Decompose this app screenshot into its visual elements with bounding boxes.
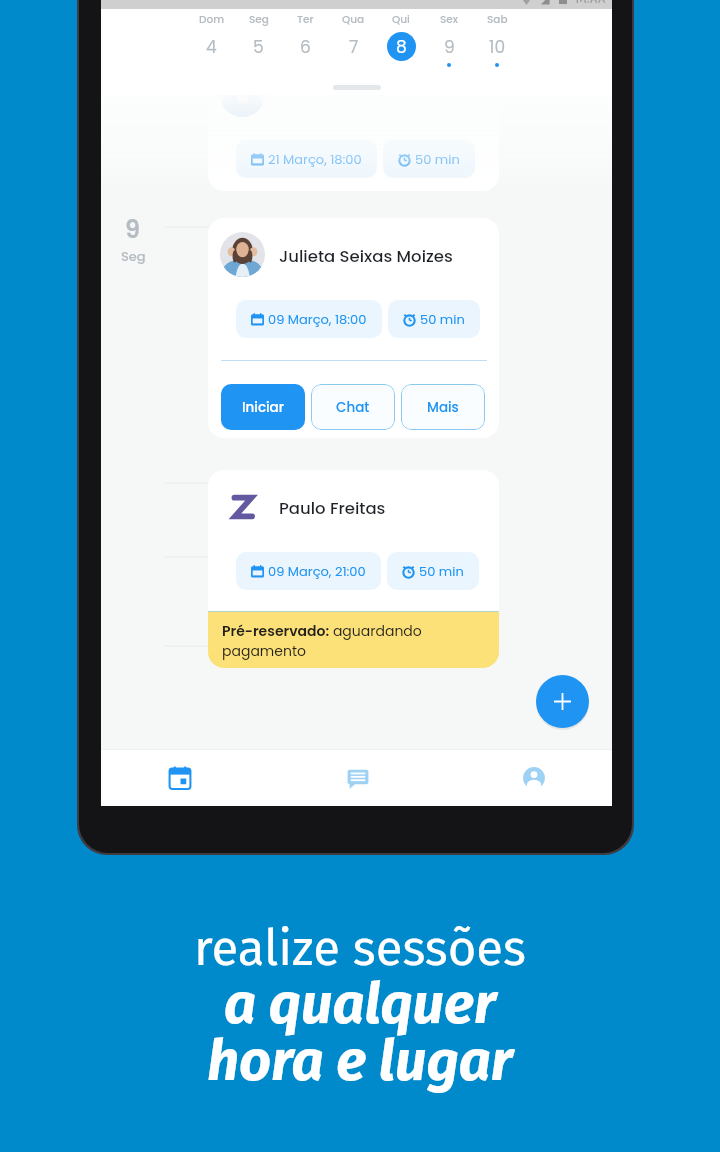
staticText: 10 <box>489 35 506 59</box>
staticText: Pré-reservado: aguardando pagamento <box>222 621 487 661</box>
button[interactable]: Qui <box>377 12 425 63</box>
staticText: hora e lugar <box>207 1028 513 1095</box>
staticText: realize sessões <box>194 919 526 978</box>
staticText: Paulo Freitas <box>279 497 386 520</box>
staticText: Julieta Seixas Moizes <box>279 245 453 268</box>
staticText: Chat <box>336 398 370 417</box>
button[interactable]: Julieta Seixas Moizes <box>208 218 499 438</box>
staticText: Sab <box>487 12 508 27</box>
staticText: a qualquer <box>224 971 496 1038</box>
staticText: Mais <box>427 398 459 417</box>
staticText: 50 min <box>415 150 460 168</box>
staticText: Qui <box>392 12 410 27</box>
staticText: 6 <box>300 35 311 59</box>
staticText: 9 <box>125 213 141 247</box>
staticText: 7 <box>349 35 359 59</box>
button[interactable]: Qua <box>329 12 377 63</box>
staticText: Sex <box>440 12 459 27</box>
button[interactable]: Sab <box>473 12 521 67</box>
staticText: 4 <box>206 35 217 59</box>
staticText: 09 Março, 21:00 <box>268 562 366 580</box>
button[interactable]: Sex <box>425 12 473 67</box>
staticText: Seg <box>121 247 146 265</box>
staticText: 21 Março, 18:00 <box>268 150 362 168</box>
staticText: Ter <box>297 12 314 27</box>
staticText: 50 min <box>420 310 465 328</box>
button[interactable]: Ter <box>282 12 329 63</box>
staticText: 12:00 <box>575 0 606 3</box>
staticText: 9 <box>444 35 455 59</box>
staticText: Qua <box>342 12 365 27</box>
button[interactable]: Seg <box>235 12 282 63</box>
button[interactable]: 21 Março, 18:00 <box>208 95 499 191</box>
staticText: Iniciar <box>242 398 284 417</box>
staticText: Dom <box>199 12 225 27</box>
button[interactable]: Mais <box>401 384 485 430</box>
button[interactable]: Iniciar <box>221 384 305 430</box>
button[interactable]: Mensagens <box>272 750 442 806</box>
button[interactable]: Agenda <box>101 750 272 806</box>
staticText: 5 <box>253 35 264 59</box>
button[interactable]: Nova sessão <box>536 675 589 728</box>
staticText: Seg <box>249 12 269 27</box>
button[interactable]: Paulo Freitas <box>208 470 499 668</box>
button[interactable]: Dom <box>188 12 235 63</box>
staticText: 50 min <box>419 562 464 580</box>
button[interactable]: Perfil <box>442 750 612 806</box>
staticText: 8 <box>396 35 407 59</box>
staticText: 09 Março, 18:00 <box>268 310 367 328</box>
button[interactable]: Chat <box>311 384 395 430</box>
